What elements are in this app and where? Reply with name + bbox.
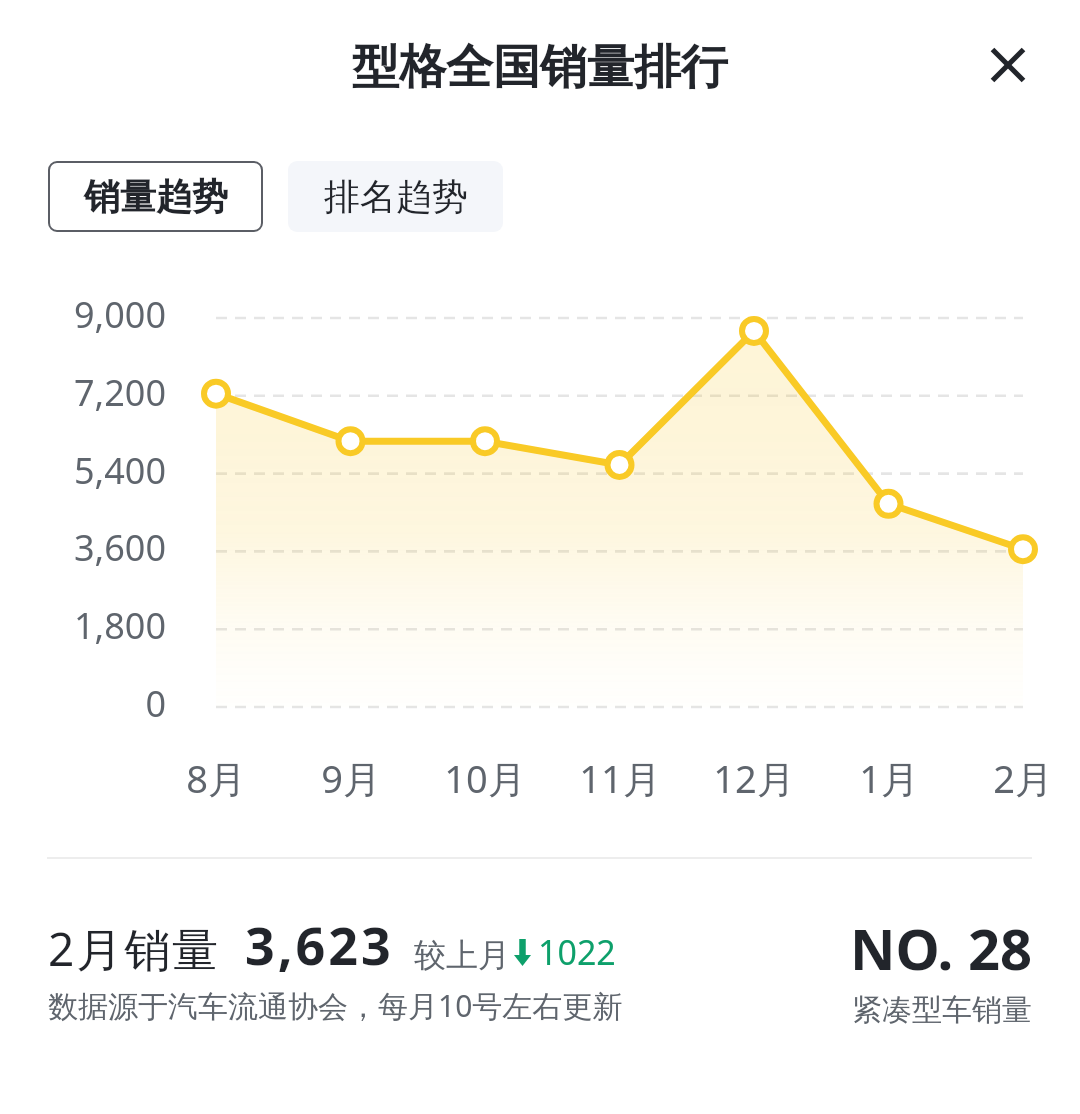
staticText: 型格全国销量排行 <box>0 38 1080 97</box>
staticText: 0 <box>0 679 166 728</box>
staticText: 较上月 <box>414 935 510 975</box>
staticText: 3,623 <box>245 909 394 980</box>
button[interactable]: Close <box>960 17 1056 113</box>
staticText: 1,800 <box>0 601 166 650</box>
staticText: 10月 <box>395 752 575 804</box>
staticText: 11月 <box>530 752 710 804</box>
staticText: 销量趋势 <box>84 174 228 219</box>
staticText: 12月 <box>664 752 844 804</box>
staticText: 2月 <box>933 752 1080 804</box>
staticText: 5,400 <box>0 446 166 495</box>
staticText: 排名趋势 <box>324 174 468 219</box>
staticText: 2月销量 <box>48 917 221 980</box>
button[interactable]: 排名趋势 <box>288 161 503 232</box>
button[interactable]: 销量趋势 <box>48 161 263 232</box>
staticText: 紧凑型车销量 <box>852 991 1032 1029</box>
staticText: 1月 <box>799 752 979 804</box>
staticText: 数据源于汽车流通协会，每月10号左右更新 <box>48 985 623 1026</box>
staticText: 1022 <box>538 929 616 975</box>
staticText: NO. 28 <box>850 910 1032 986</box>
staticText: 8月 <box>126 752 306 804</box>
staticText: 9,000 <box>0 290 166 339</box>
staticText: 3,600 <box>0 523 166 572</box>
staticText: 7,200 <box>0 368 166 417</box>
staticText: 9月 <box>261 752 441 804</box>
